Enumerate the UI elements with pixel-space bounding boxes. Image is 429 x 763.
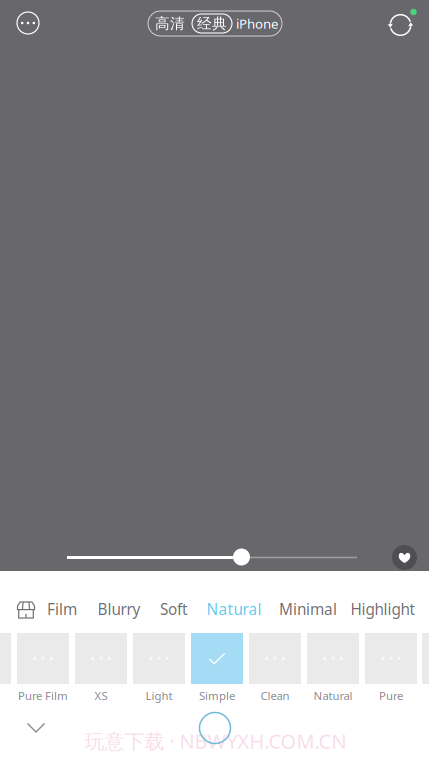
button[interactable]: Simple [191,633,243,702]
button[interactable]: Minimal [274,598,342,620]
staticText: Natural [313,688,352,703]
button[interactable]: More options [11,6,45,40]
button[interactable]: Switch camera [385,7,419,41]
staticText: Clean [260,688,289,703]
staticText: Pure [379,688,403,703]
button[interactable]: Light [133,633,185,702]
staticText: Light [145,688,172,703]
button[interactable]: Blurry [92,598,146,620]
staticText: XS [94,688,107,703]
staticText: Highlight [350,599,415,619]
staticText: Film [47,599,77,619]
staticText: Pure Film [18,688,68,703]
staticText: Minimal [279,599,337,619]
button[interactable]: 高清 [149,11,191,36]
staticText: Soft [160,599,188,619]
button[interactable]: Highlight [344,598,422,620]
button[interactable]: iPhone [234,11,281,36]
staticText: Blurry [97,599,140,619]
button[interactable]: Natural [202,598,266,620]
staticText: 玩意下载 · NBWYXH.COM.CN [84,728,346,754]
button[interactable]: Filter store [8,595,44,625]
button[interactable]: Pure [365,633,417,702]
staticText: Natural [206,599,261,619]
button[interactable]: Collapse [16,711,56,745]
button[interactable]: Favourites [388,541,421,574]
button[interactable]: XS [75,633,127,702]
button[interactable]: Natural [307,633,359,702]
button[interactable]: Pure Film [17,633,69,702]
button[interactable]: Clean [249,633,301,702]
staticText: iPhone [236,15,279,32]
button[interactable]: Shutter [191,704,239,752]
button[interactable]: Soft [154,598,194,620]
button[interactable]: Film [42,598,82,620]
staticText: 经典 [197,14,227,32]
staticText: Simple [199,688,235,703]
staticText: 高清 [155,14,185,32]
button[interactable]: 经典 [191,11,233,36]
